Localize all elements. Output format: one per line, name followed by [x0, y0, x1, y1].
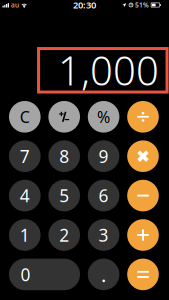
button[interactable]: 4: [9, 180, 41, 211]
button[interactable]: Plus minus: [48, 101, 80, 133]
staticText: 5: [59, 184, 69, 207]
button[interactable]: 0: [9, 259, 80, 290]
staticText: 7: [20, 145, 30, 168]
button[interactable]: 9: [88, 140, 119, 172]
button[interactable]: 1: [9, 219, 41, 251]
button[interactable]: 7: [9, 140, 41, 172]
staticText: 8: [59, 145, 69, 168]
button[interactable]: Multiply: [127, 140, 159, 172]
staticText: 9: [99, 145, 109, 168]
button[interactable]: Equals: [127, 259, 159, 290]
button[interactable]: 6: [88, 180, 119, 211]
button[interactable]: Plus: [127, 219, 159, 251]
button[interactable]: %: [88, 101, 119, 133]
staticText: 1,000: [58, 43, 159, 96]
staticText: au: [11, 1, 19, 9]
button[interactable]: Minus: [127, 180, 159, 211]
staticText: 0: [20, 263, 30, 286]
staticText: .: [101, 261, 106, 288]
button[interactable]: 2: [48, 219, 80, 251]
staticText: C: [20, 106, 30, 127]
staticText: 4: [20, 184, 30, 207]
staticText: 20:30: [73, 0, 96, 11]
staticText: 3: [99, 223, 109, 246]
staticText: 6: [99, 184, 109, 207]
button[interactable]: 3: [88, 219, 119, 251]
button[interactable]: Divide: [127, 101, 159, 133]
button[interactable]: 5: [48, 180, 80, 211]
staticText: 51%: [135, 1, 149, 9]
button[interactable]: 8: [48, 140, 80, 172]
button[interactable]: C: [9, 101, 41, 133]
staticText: 2: [59, 223, 69, 246]
staticText: %: [97, 106, 110, 127]
staticText: 1: [20, 223, 30, 246]
button[interactable]: .: [88, 259, 119, 290]
